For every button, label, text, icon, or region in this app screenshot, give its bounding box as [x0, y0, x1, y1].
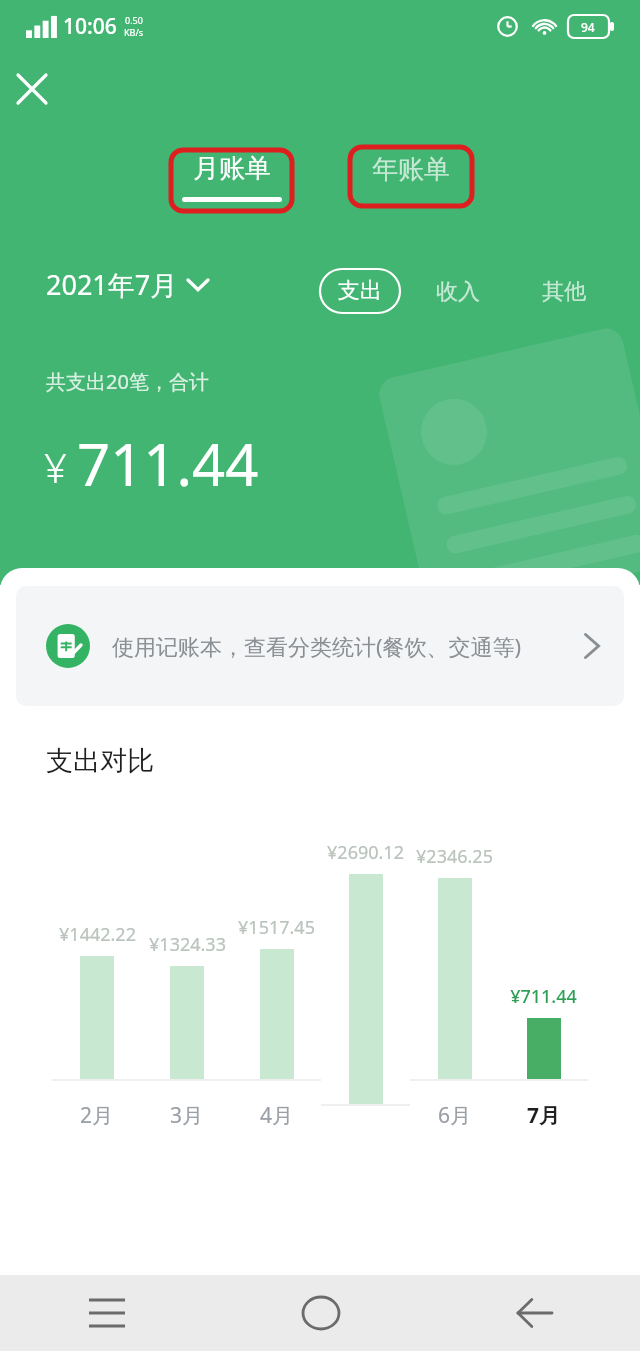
button[interactable]: 使用记账本，查看分类统计(餐饮、交通等) — [16, 586, 624, 706]
button[interactable]: 月账单 — [176, 152, 288, 202]
button[interactable]: Recent apps — [0, 1275, 214, 1351]
staticText: 2月 — [80, 1101, 114, 1130]
staticText: 6月 — [438, 1101, 472, 1130]
staticText: 使用记账本，查看分类统计(餐饮、交通等) — [112, 631, 568, 661]
button[interactable]: Home — [214, 1275, 427, 1351]
staticText: 收入 — [436, 278, 480, 306]
staticText: 7月 — [527, 1101, 561, 1130]
button[interactable]: 支出 — [320, 269, 400, 313]
staticText: 4月 — [260, 1101, 294, 1130]
staticText: ¥1442.22 — [59, 922, 136, 947]
staticText: 支出 — [338, 277, 382, 305]
staticText: 0.50 — [125, 14, 143, 26]
button[interactable]: Back — [427, 1275, 640, 1351]
button[interactable]: 收入 — [436, 278, 480, 306]
staticText: KB/s — [124, 26, 144, 38]
staticText: ¥2346.25 — [416, 844, 493, 869]
staticText: ¥1324.33 — [149, 932, 226, 957]
button[interactable]: 其他 — [542, 278, 586, 306]
staticText: 支出对比 — [46, 744, 154, 778]
staticText: ¥711.44 — [510, 984, 577, 1009]
staticText: 其他 — [542, 278, 586, 306]
staticText: ¥ — [44, 440, 67, 494]
staticText: 711.44 — [77, 424, 259, 503]
button[interactable]: 年账单 — [356, 153, 466, 186]
staticText: 月账单 — [193, 152, 271, 185]
staticText: ¥2690.12 — [327, 840, 404, 865]
staticText: 10:06 — [63, 12, 117, 41]
button[interactable]: 2021年7月 — [46, 266, 208, 303]
button[interactable]: Close — [8, 65, 56, 113]
staticText: 2021年7月 — [46, 266, 178, 303]
staticText: 3月 — [170, 1101, 204, 1130]
staticText: 94 — [581, 19, 595, 35]
staticText: 共支出20笔，合计 — [46, 368, 209, 395]
staticText: ¥1517.45 — [238, 915, 315, 940]
staticText: 年账单 — [372, 153, 450, 186]
